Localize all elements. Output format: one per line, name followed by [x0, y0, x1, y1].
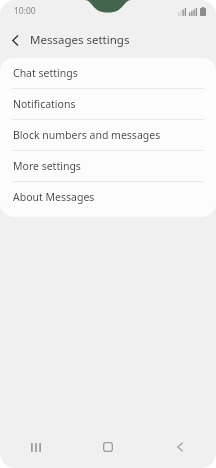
- staticText: Messages settings: [30, 32, 130, 48]
- button[interactable]: Block numbers and messages: [0, 120, 216, 150]
- button[interactable]: More settings: [0, 151, 216, 181]
- button[interactable]: About Messages: [0, 182, 216, 212]
- button[interactable]: Back: [144, 426, 216, 468]
- staticText: Chat settings: [13, 66, 78, 80]
- button[interactable]: Back: [0, 25, 30, 55]
- button[interactable]: Home: [72, 426, 144, 468]
- button[interactable]: Notifications: [0, 89, 216, 119]
- staticText: About Messages: [13, 190, 95, 204]
- button[interactable]: Recent apps: [0, 426, 72, 468]
- button[interactable]: Chat settings: [0, 58, 216, 88]
- staticText: Notifications: [13, 97, 76, 111]
- staticText: More settings: [13, 159, 81, 173]
- staticText: Block numbers and messages: [13, 128, 161, 142]
- staticText: 10:00: [14, 5, 36, 17]
